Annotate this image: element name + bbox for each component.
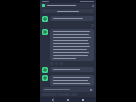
- button[interactable]: [42, 16, 94, 22]
- button[interactable]: Message action: [42, 29, 94, 65]
- button[interactable]: Message action: [42, 75, 94, 86]
- button[interactable]: Send: [42, 87, 94, 92]
- button[interactable]: Recent apps: [81, 98, 85, 102]
- button[interactable]: More options: [42, 3, 94, 8]
- button[interactable]: Back: [51, 98, 55, 102]
- button[interactable]: Home: [66, 98, 70, 102]
- button[interactable]: [42, 67, 94, 73]
- button[interactable]: [42, 9, 94, 13]
